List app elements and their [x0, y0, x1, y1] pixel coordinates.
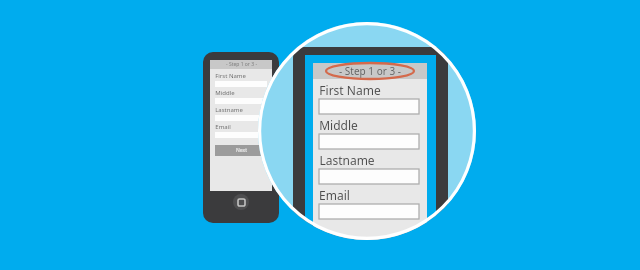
button[interactable] [319, 99, 419, 114]
staticText: First Name [319, 82, 381, 98]
staticText: First Name [215, 72, 246, 80]
button[interactable]: - Step 1 or 3 - [203, 52, 279, 223]
staticText: Lastname [215, 106, 243, 114]
staticText: Next [236, 147, 247, 154]
button[interactable]: - Step 1 or 3 - [210, 60, 272, 69]
staticText: - Step 1 or 3 - [226, 61, 257, 68]
button[interactable]: Next [215, 145, 267, 156]
button[interactable]: - Step 1 or 3 - [293, 47, 448, 240]
staticText: - Step 1 or 3 - [339, 64, 401, 78]
staticText: Middle [215, 89, 235, 97]
button[interactable] [319, 134, 419, 149]
button[interactable] [215, 115, 267, 121]
button[interactable] [319, 169, 419, 184]
button[interactable] [215, 98, 267, 104]
staticText: Middle [319, 117, 358, 133]
staticText: Email [215, 123, 231, 131]
button[interactable] [319, 204, 419, 219]
button[interactable]: Home [233, 194, 249, 210]
staticText: Lastname [319, 152, 375, 168]
staticText: Email [319, 187, 350, 203]
button[interactable] [215, 132, 267, 138]
button[interactable]: - Step 1 or 3 - [313, 63, 427, 79]
